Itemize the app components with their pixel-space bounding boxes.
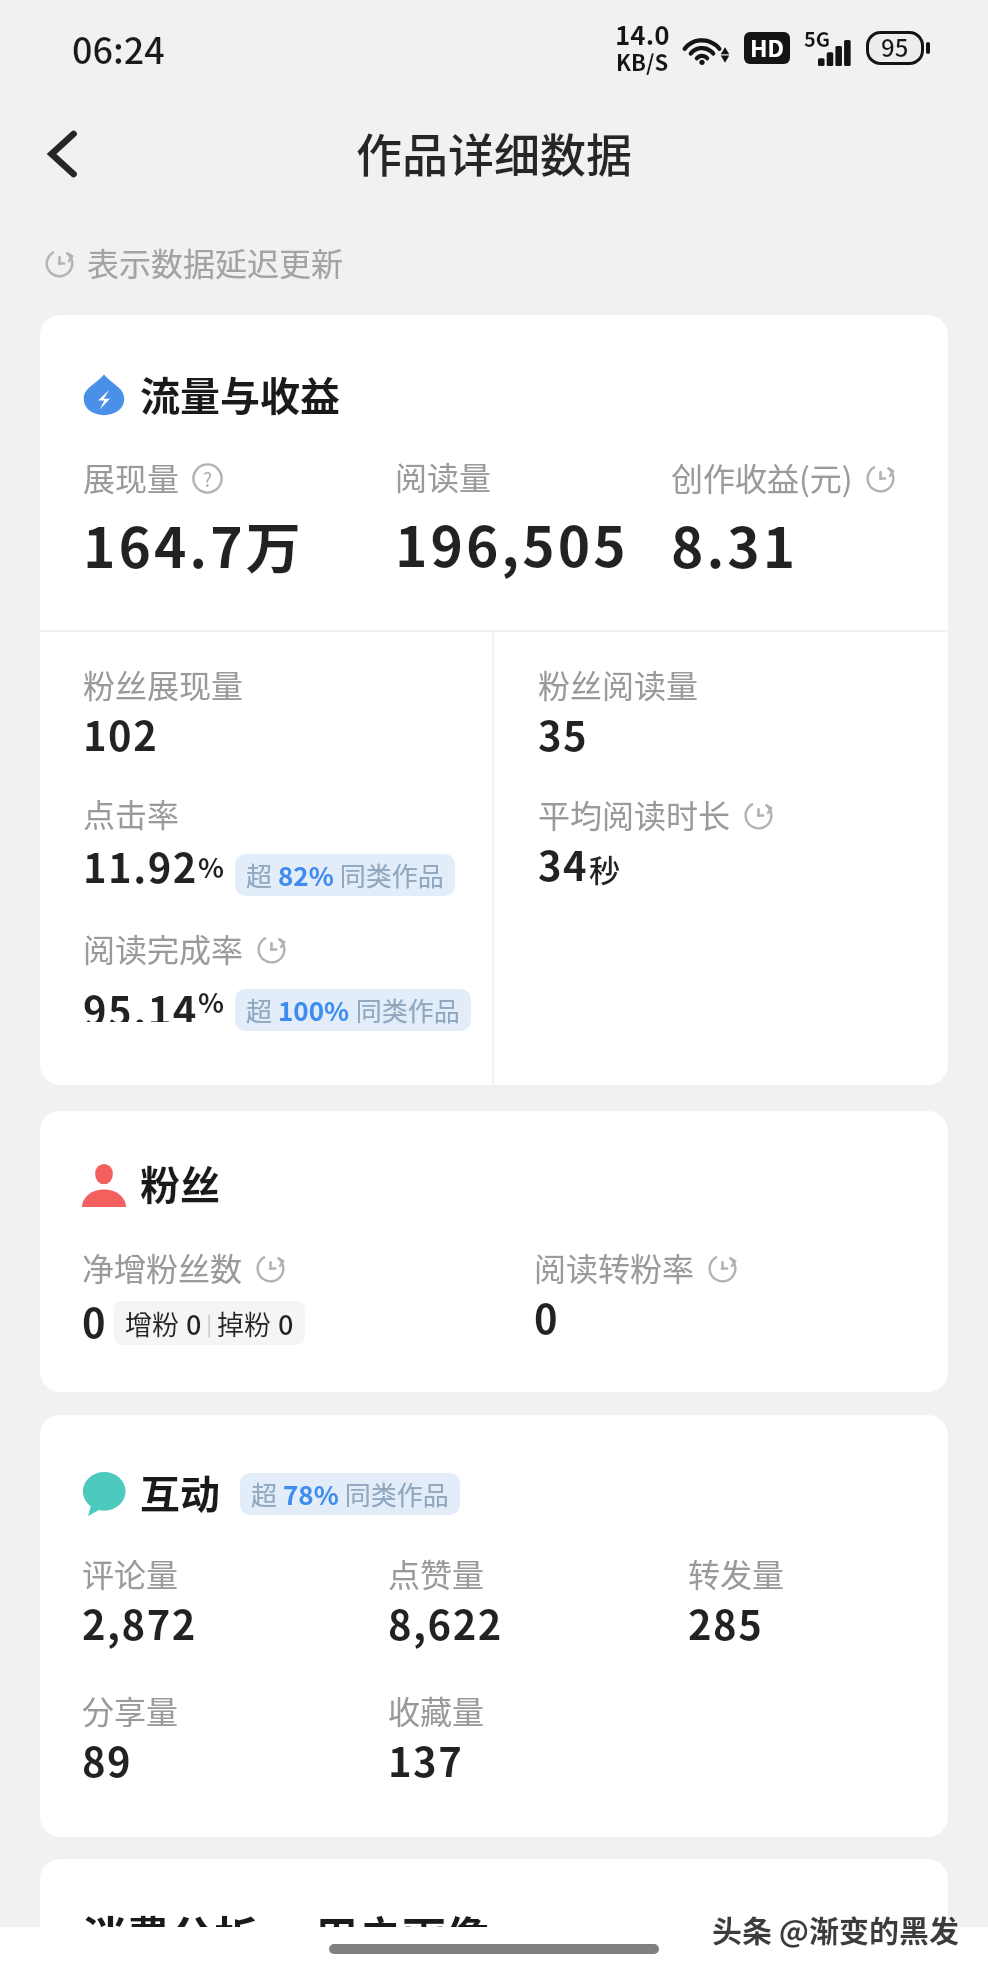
staticText: 8.31 [671, 504, 799, 584]
staticText: 平均阅读时长 [538, 791, 731, 837]
staticText: 同类作品 [350, 991, 460, 1029]
staticText: 34 [538, 835, 589, 893]
staticText: 95.14 [83, 980, 198, 1022]
staticText: 102 [83, 705, 159, 763]
staticText: 头条 @渐变的黑发 [712, 1907, 960, 1950]
staticText: 展现量 [83, 454, 180, 500]
staticText: 超 [246, 991, 278, 1029]
staticText: 流量与收益 [140, 365, 340, 423]
staticText: 5G [804, 24, 831, 53]
staticText: 秒 [589, 846, 620, 891]
staticText: 8,622 [388, 1594, 503, 1652]
staticText: 285 [688, 1594, 764, 1652]
staticText: | [202, 1309, 217, 1338]
staticText: 0 [186, 1304, 202, 1343]
staticText: 表示数据延迟更新 [87, 239, 344, 285]
staticText: 35 [538, 705, 589, 763]
staticText: 82% [278, 856, 334, 894]
staticText: 阅读完成率 [83, 925, 244, 971]
staticText: 196,505 [395, 503, 629, 583]
staticText: 掉粉 [217, 1304, 278, 1343]
staticText: % [198, 847, 225, 886]
staticText: 阅读转粉率 [534, 1244, 695, 1290]
staticText: 点赞量 [388, 1550, 485, 1596]
staticText: 0 [278, 1304, 294, 1343]
staticText: 粉丝展现量 [83, 661, 244, 707]
staticText: 净增粉丝数 [82, 1244, 243, 1290]
staticText: 用户画像 [314, 1903, 490, 1958]
staticText: 粉丝 [140, 1154, 220, 1212]
staticText: 点击率 [83, 790, 180, 836]
staticText: 互动 [140, 1463, 220, 1521]
staticText: 创作收益(元) [671, 454, 853, 500]
staticText: 14.0 [615, 15, 670, 53]
staticText: 增粉 [125, 1304, 186, 1343]
staticText: 89 [82, 1731, 133, 1789]
staticText: 超 [246, 856, 278, 894]
staticText: 收藏量 [388, 1687, 485, 1733]
staticText: 阅读量 [395, 453, 492, 499]
staticText: % [198, 982, 225, 1021]
staticText: 137 [388, 1731, 464, 1789]
staticText: ? [203, 465, 213, 493]
staticText: HD [750, 32, 784, 63]
staticText: 同类作品 [334, 856, 444, 894]
staticText: 作品详细数据 [356, 119, 632, 186]
staticText: 消费分析 [82, 1903, 258, 1958]
staticText: 转发量 [688, 1550, 785, 1596]
staticText: 06:24 [72, 22, 165, 74]
staticText: 0 [534, 1288, 560, 1346]
staticText: 78% [283, 1475, 339, 1513]
staticText: 11.92 [83, 837, 198, 895]
staticText: 超 [251, 1475, 283, 1513]
staticText: 0 [82, 1292, 108, 1350]
staticText: 100% [278, 991, 350, 1029]
staticText: 2,872 [82, 1594, 197, 1652]
staticText: 95 [881, 29, 909, 64]
staticText: 同类作品 [339, 1475, 449, 1513]
staticText: 粉丝阅读量 [538, 661, 699, 707]
staticText: 评论量 [82, 1550, 179, 1596]
staticText: 分享量 [82, 1687, 179, 1733]
staticText: 164.7万 [83, 504, 304, 584]
button[interactable]: Back [24, 114, 104, 194]
staticText: KB/S [616, 45, 669, 77]
